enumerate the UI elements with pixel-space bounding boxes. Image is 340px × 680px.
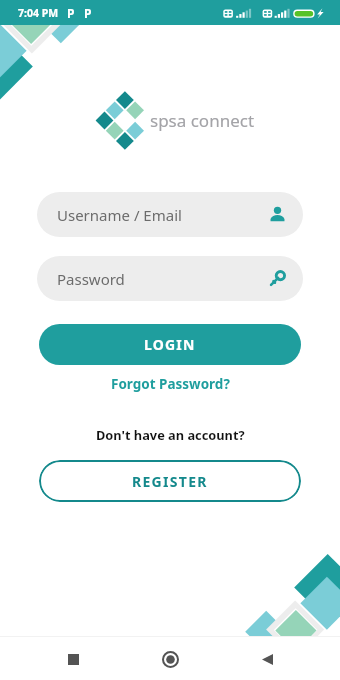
staticText: P <box>84 5 92 21</box>
staticText: Don't have an account? <box>96 426 245 443</box>
staticText: Password <box>57 269 125 289</box>
button[interactable]: Forgot Password? <box>103 372 238 396</box>
button[interactable]: Username / Email <box>37 192 303 237</box>
button[interactable]: LOGIN <box>39 324 301 365</box>
button[interactable]: Back <box>243 638 291 680</box>
staticText: Forgot Password? <box>111 375 230 393</box>
staticText: Username / Email <box>57 205 182 225</box>
button[interactable]: REGISTER <box>39 460 301 502</box>
button[interactable]: Home <box>146 638 194 680</box>
staticText: P <box>67 5 75 21</box>
staticText: REGISTER <box>132 472 208 491</box>
button[interactable]: Password <box>37 256 303 301</box>
staticText: spsa connect <box>150 109 255 132</box>
staticText: 7:04 PM <box>18 6 59 20</box>
staticText: LOGIN <box>144 335 196 354</box>
button[interactable]: Recent apps <box>49 638 97 680</box>
